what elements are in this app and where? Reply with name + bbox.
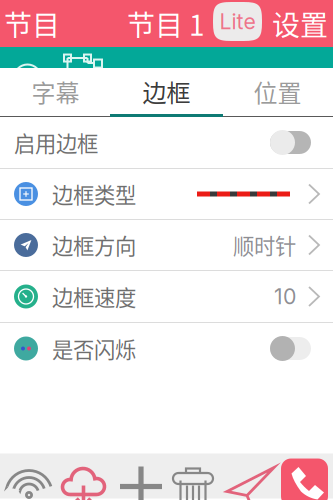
staticText: 启用边框: [14, 127, 98, 158]
staticText: 节目 1: [127, 3, 205, 44]
button[interactable]: 字幕: [0, 68, 111, 115]
button[interactable]: Lite: [213, 2, 262, 41]
staticText: 设置: [272, 3, 328, 44]
button[interactable]: 边框: [111, 68, 222, 115]
button[interactable]: Delete: [173, 458, 213, 500]
button[interactable]: 边框类型: [0, 169, 333, 219]
button[interactable]: 设置: [272, 0, 328, 47]
staticText: 顺时针: [233, 230, 296, 260]
button[interactable]: 边框方向: [0, 220, 333, 270]
staticText: 边框速度: [52, 281, 136, 312]
button[interactable]: Download: [57, 459, 110, 500]
staticText: 是否闪烁: [52, 333, 136, 364]
staticText: 字幕: [31, 74, 79, 109]
button[interactable]: 是否闪烁: [0, 323, 333, 374]
staticText: 边框类型: [52, 179, 136, 209]
staticText: 边框方向: [52, 230, 136, 260]
staticText: Lite: [219, 9, 255, 34]
button[interactable]: Wi-Fi: [6, 463, 54, 500]
button[interactable]: 位置: [222, 68, 333, 115]
button[interactable]: Call: [281, 458, 328, 500]
staticText: 10: [274, 284, 296, 309]
button[interactable]: Send: [222, 459, 278, 500]
staticText: 节目: [4, 3, 60, 44]
button[interactable]: 启用边框: [0, 117, 333, 168]
staticText: 边框: [142, 74, 190, 109]
button[interactable]: Add: [117, 458, 165, 500]
button[interactable]: 节目: [4, 0, 60, 47]
button[interactable]: 边框速度: [0, 271, 333, 322]
staticText: 位置: [253, 74, 301, 109]
